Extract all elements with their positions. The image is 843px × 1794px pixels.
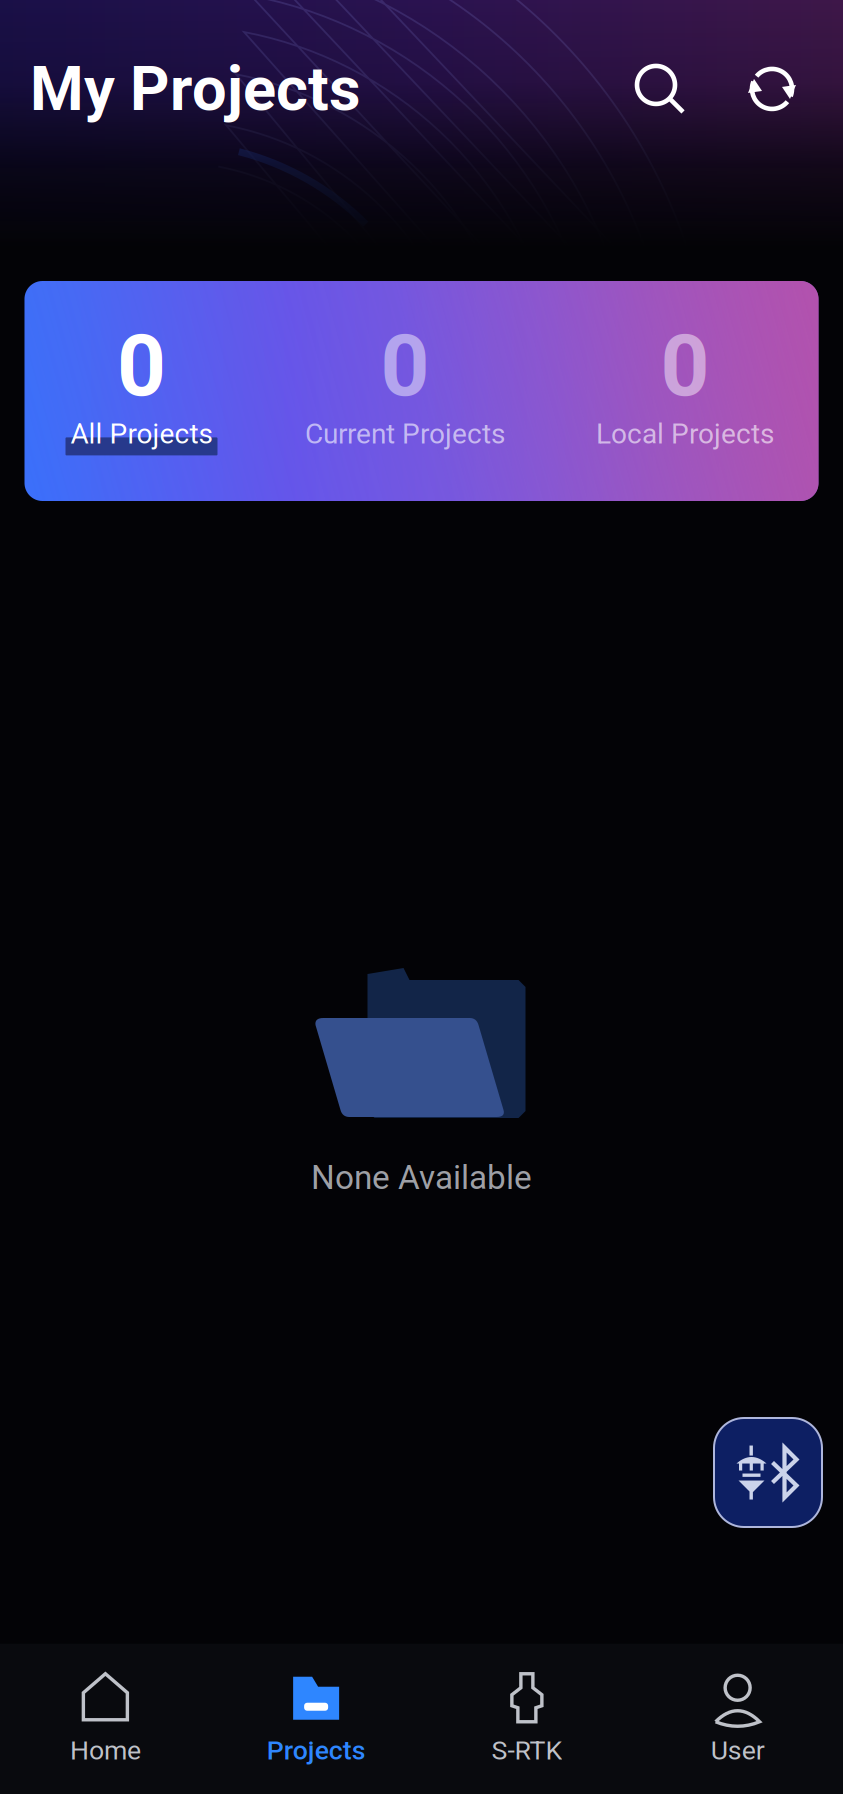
staticText: 0 <box>117 316 166 416</box>
staticText: My Projects <box>30 53 361 125</box>
button[interactable]: User <box>632 1671 843 1766</box>
button[interactable]: Projects <box>211 1671 422 1766</box>
staticText: Projects <box>267 1735 366 1766</box>
staticText: 0 <box>660 316 709 416</box>
button[interactable]: Search <box>634 63 686 115</box>
staticText: All Projects <box>70 418 212 450</box>
staticText: Local Projects <box>596 418 774 450</box>
staticText: S-RTK <box>491 1735 562 1766</box>
staticText: Home <box>70 1735 141 1766</box>
button[interactable]: Refresh <box>746 63 798 115</box>
button[interactable]: 0 <box>551 316 818 463</box>
button[interactable]: S-RTK <box>421 1671 632 1766</box>
staticText: 0 <box>380 316 429 416</box>
button[interactable]: Home <box>0 1671 211 1766</box>
staticText: None Available <box>311 1158 532 1197</box>
button[interactable]: Connect device <box>714 1418 822 1527</box>
button[interactable]: 0 <box>258 316 551 463</box>
staticText: Current Projects <box>305 418 505 450</box>
staticText: User <box>711 1735 765 1766</box>
button[interactable]: 0 <box>24 316 258 463</box>
